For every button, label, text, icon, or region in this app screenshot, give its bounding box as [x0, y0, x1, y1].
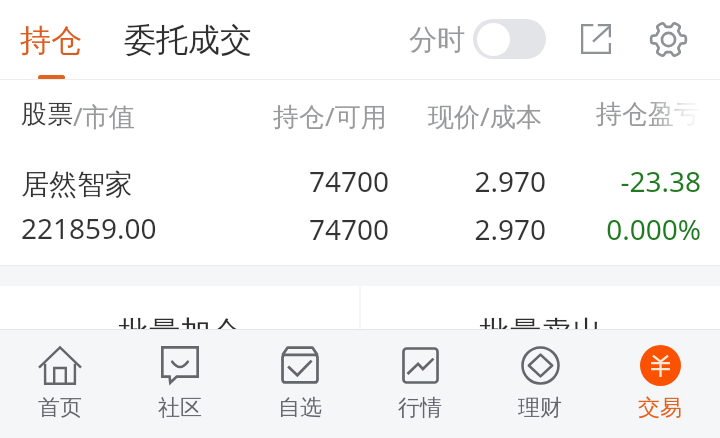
- staticText: 自选: [278, 394, 322, 422]
- button[interactable]: 设置: [641, 12, 695, 66]
- staticText: 批量卖出: [479, 313, 603, 352]
- staticText: 持仓: [20, 21, 82, 60]
- staticText: 首页: [38, 394, 82, 422]
- staticText: 交易: [638, 394, 682, 422]
- staticText: 批量加仓: [118, 313, 242, 352]
- button[interactable]: 社区: [120, 330, 240, 438]
- staticText: 分时: [409, 22, 465, 57]
- button[interactable]: 分享: [566, 9, 626, 69]
- button[interactable]: 行情: [360, 330, 480, 438]
- staticText: 74700: [308, 210, 389, 248]
- staticText: 221859.00: [21, 209, 157, 247]
- button[interactable]: 理财: [480, 330, 600, 438]
- staticText: 持仓/可用: [273, 98, 387, 134]
- button[interactable]: 批量卖出: [361, 286, 720, 396]
- button[interactable]: 交易: [600, 330, 720, 438]
- staticText: 居然智家: [21, 167, 133, 202]
- button[interactable]: 委托成交: [110, 10, 266, 70]
- staticText: 现价/成本: [428, 98, 542, 134]
- staticText: 74700: [308, 162, 389, 200]
- staticText: -23.38: [620, 162, 701, 200]
- staticText: /市值: [73, 98, 135, 134]
- staticText: 持仓盈亏: [596, 98, 700, 131]
- button[interactable]: 持仓: [6, 11, 96, 70]
- staticText: 2.970: [474, 162, 546, 200]
- button[interactable]: 自选: [240, 330, 360, 438]
- staticText: 股票: [21, 98, 73, 131]
- staticText: 2.970: [474, 210, 546, 248]
- staticText: 行情: [398, 394, 442, 422]
- staticText: 社区: [158, 394, 202, 422]
- button[interactable]: 批量加仓: [0, 286, 359, 396]
- button[interactable]: 首页: [0, 330, 120, 438]
- button[interactable]: 分时开关: [399, 13, 556, 65]
- staticText: 委托成交: [124, 20, 252, 60]
- staticText: 0.000%: [606, 210, 701, 248]
- staticText: 理财: [518, 394, 562, 422]
- button[interactable]: 居然智家: [0, 147, 720, 265]
